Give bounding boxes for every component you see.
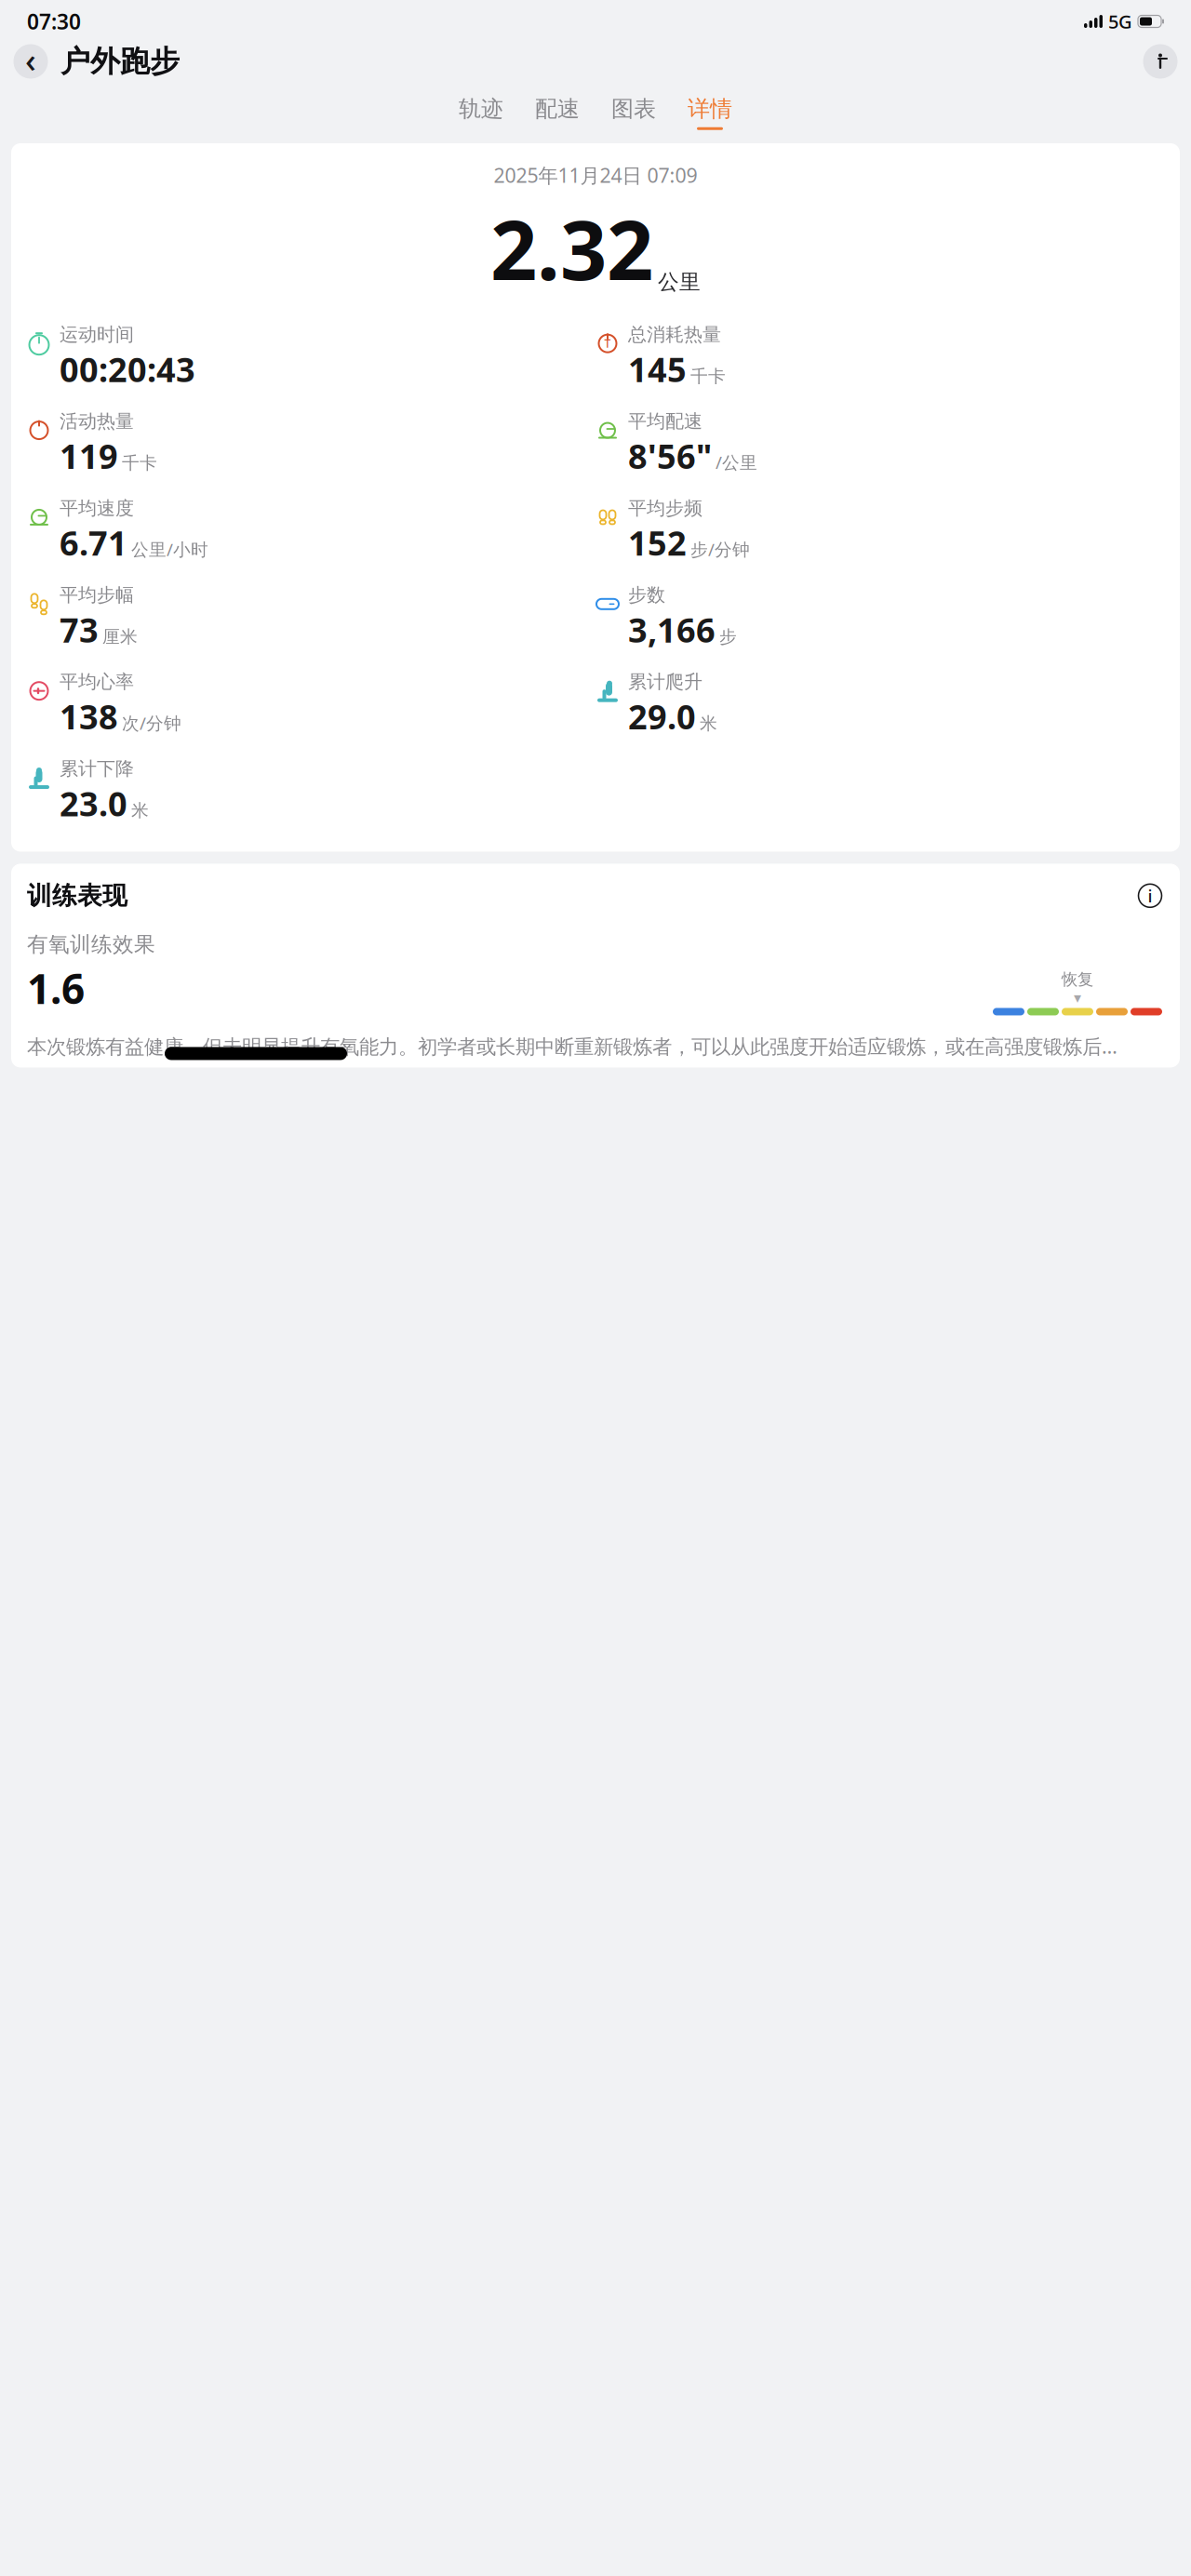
staticText: 公里 <box>658 269 701 295</box>
staticText: 步/分钟 <box>690 538 750 561</box>
staticText: 配速 <box>535 95 580 123</box>
staticText: 次/分钟 <box>122 711 181 734</box>
staticText: 步数 <box>628 584 665 606</box>
staticText: 米 <box>700 713 717 734</box>
staticText: 2.32 <box>490 194 653 303</box>
staticText: 户外跑步 <box>60 43 180 80</box>
staticText: ‹ <box>25 37 36 82</box>
staticText: 累计爬升 <box>628 670 703 693</box>
staticText: 恢复 <box>1062 969 1093 989</box>
staticText: 总消耗热量 <box>628 323 721 346</box>
staticText: 6.71 <box>60 521 127 565</box>
staticText: 运动时间 <box>60 323 134 346</box>
staticText: 活动热量 <box>60 410 134 433</box>
staticText: 详情 <box>688 95 732 123</box>
staticText: 1.6 <box>27 961 85 1015</box>
staticText: 平均配速 <box>628 410 703 433</box>
button[interactable]: 说明 <box>1136 882 1164 910</box>
button[interactable]: 返回 <box>12 43 49 80</box>
staticText: 本次锻炼有益健康，但未明显提升有氧能力。初学者或长期中断重新锻炼者，可以从此强度… <box>27 1033 1117 1059</box>
staticText: i <box>1148 884 1152 907</box>
staticText: T <box>604 336 611 351</box>
staticText: 厘米 <box>102 626 138 647</box>
staticText: 累计下降 <box>60 757 134 780</box>
staticText: 29.0 <box>628 694 696 739</box>
staticText: 千卡 <box>690 366 726 387</box>
staticText: 145 <box>628 347 687 391</box>
button[interactable]: 轨迹 <box>453 95 509 130</box>
staticText: 千卡 <box>122 452 157 474</box>
staticText: 训练表现 <box>27 880 127 911</box>
staticText: 8'56" <box>628 434 712 478</box>
staticText: 00:20:43 <box>60 347 195 391</box>
button[interactable]: 详情 <box>682 95 738 130</box>
staticText: 步 <box>719 626 737 647</box>
staticText: 米 <box>131 800 149 821</box>
staticText: 公里/小时 <box>131 538 208 561</box>
button[interactable]: 运动类型 <box>1142 43 1179 80</box>
staticText: 5G <box>1108 9 1132 34</box>
button[interactable]: 配速 <box>529 95 585 130</box>
staticText: 2025年11月24日 07:09 <box>494 162 697 188</box>
staticText: 轨迹 <box>459 95 503 123</box>
staticText: 07:30 <box>27 7 81 35</box>
staticText: 73 <box>60 607 99 652</box>
staticText: 平均步频 <box>628 497 703 520</box>
staticText: 平均步幅 <box>60 584 134 606</box>
staticText: 有氧训练效果 <box>27 931 155 957</box>
staticText: 平均心率 <box>60 670 134 693</box>
button[interactable]: 图表 <box>606 95 662 130</box>
staticText: 23.0 <box>60 781 127 826</box>
staticText: 3,166 <box>628 607 716 652</box>
staticText: 平均速度 <box>60 497 134 520</box>
staticText: 152 <box>628 521 687 565</box>
staticText: 138 <box>60 694 118 739</box>
staticText: /公里 <box>716 451 757 474</box>
staticText: 119 <box>60 434 118 478</box>
staticText: 图表 <box>611 95 656 123</box>
staticText: ▾ <box>1074 989 1081 1006</box>
